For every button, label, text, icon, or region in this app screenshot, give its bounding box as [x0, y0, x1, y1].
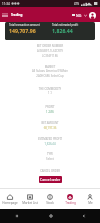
staticText: 11:34 [2, 2, 10, 6]
staticText: 68,197.36 [0, 126, 100, 130]
staticText: Total transaction amount [9, 23, 40, 27]
staticText: 1.24% [0, 110, 100, 114]
staticText: All Subaru America 0%Main [0, 69, 100, 73]
staticText: 149,707.96 [9, 27, 36, 34]
staticText: 1.1 [0, 91, 100, 95]
button[interactable]: Me [80, 189, 100, 209]
staticText: BET AMOUNT [0, 121, 100, 125]
staticText: Total estimated profit [52, 23, 79, 27]
staticText: CANCEL ORDER [0, 169, 100, 173]
staticText: Stock [46, 201, 54, 205]
button[interactable]: Stock [40, 189, 60, 209]
staticText: Homepage [2, 201, 18, 205]
staticText: NG [76, 13, 82, 18]
staticText: 1,826.44 [0, 142, 100, 146]
staticText: TYPE [0, 152, 100, 156]
staticText: Cancel order [40, 177, 61, 182]
staticText: Trading [65, 201, 76, 205]
staticText: A3SGB97-1L6ZCR79 [0, 49, 100, 53]
staticText: MARKET [0, 65, 100, 69]
button[interactable]: Market List [20, 189, 40, 209]
staticText: Me [88, 201, 93, 205]
staticText: Market List [22, 201, 38, 205]
button[interactable]: Trading [60, 189, 80, 209]
staticText: 47% [74, 2, 80, 6]
staticText: 1,826.44 [52, 27, 73, 34]
staticText: LC394F1186 [0, 54, 100, 58]
staticText: BET ORDER NUMBER [0, 44, 100, 48]
button[interactable]: Cancel order [39, 176, 62, 183]
staticText: PROFIT [0, 105, 100, 109]
staticText: THE COMMODITY [0, 87, 100, 91]
staticText: 2A0HC686 SelectCup [0, 74, 100, 78]
staticText: Select [0, 157, 100, 161]
staticText: Trading [11, 13, 23, 17]
button[interactable]: Profile [89, 12, 96, 19]
button[interactable]: Open navigation menu [2, 12, 8, 18]
staticText: ESTIMATED PROFIT [0, 137, 100, 141]
button[interactable]: Homepage [0, 189, 20, 209]
